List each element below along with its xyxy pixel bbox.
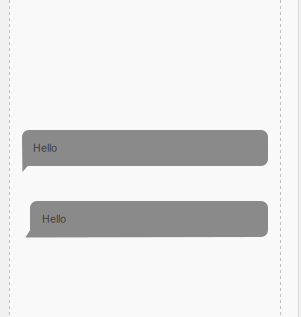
button[interactable]: Hello [30, 201, 268, 237]
button[interactable]: Hello [22, 130, 268, 166]
staticText: Hello [33, 142, 57, 154]
staticText: Hello [42, 213, 66, 225]
